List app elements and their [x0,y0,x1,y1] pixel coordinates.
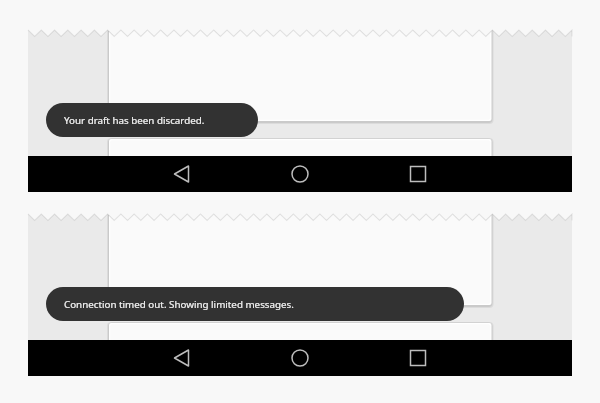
button[interactable]: Back [164,340,200,376]
button[interactable]: Recent apps [400,340,436,376]
button[interactable]: Back [164,156,200,192]
button[interactable]: Home [282,156,318,192]
button[interactable]: Connection timed out. Showing limited me… [46,287,464,321]
staticText: Connection timed out. Showing limited me… [64,298,294,311]
staticText: Your draft has been discarded. [64,114,205,127]
button[interactable]: Recent apps [400,156,436,192]
button[interactable]: Your draft has been discarded. [46,103,258,137]
button[interactable]: Home [282,340,318,376]
